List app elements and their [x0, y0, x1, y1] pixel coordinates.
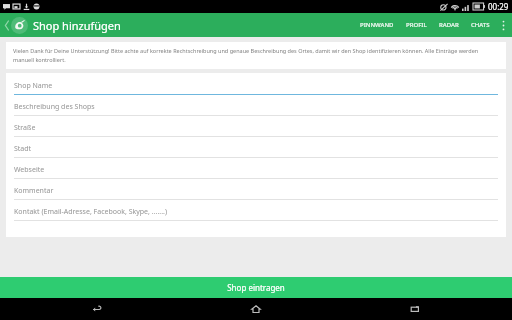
staticText: Stadt — [14, 144, 32, 154]
button[interactable]: Kontakt (Email-Adresse, Facebook, Skype,… — [14, 204, 498, 225]
button[interactable]: Webseite — [14, 162, 498, 183]
staticText: Shop hinzufügen — [33, 18, 121, 33]
button[interactable]: Recent apps — [341, 298, 512, 320]
staticText: Vielen Dank für Deine Unterstützung! Bit… — [13, 47, 499, 64]
staticText: Straße — [14, 123, 36, 133]
button[interactable]: CHATS — [465, 13, 496, 37]
button[interactable]: Stadt — [14, 141, 498, 162]
button[interactable]: More options — [496, 13, 510, 37]
button[interactable]: Back — [0, 298, 170, 320]
staticText: Shop Name — [14, 81, 53, 91]
button[interactable]: Home — [170, 298, 341, 320]
button[interactable]: PINNWAND — [354, 13, 400, 37]
staticText: Beschreibung des Shops — [14, 102, 95, 112]
staticText: Webseite — [14, 165, 45, 175]
button[interactable]: Beschreibung des Shops — [14, 99, 498, 120]
staticText: PINNWAND — [360, 21, 394, 29]
staticText: 00:29 — [488, 1, 509, 12]
button[interactable]: Shop eintragen — [0, 277, 512, 298]
staticText: PROFIL — [406, 21, 427, 29]
staticText: Shop eintragen — [227, 282, 285, 293]
staticText: CHATS — [471, 21, 490, 29]
button[interactable]: PROFIL — [400, 13, 433, 37]
staticText: Kommentar — [14, 186, 54, 196]
staticText: RADAR — [439, 21, 459, 29]
button[interactable]: Shop Name — [14, 78, 498, 99]
button[interactable]: RADAR — [433, 13, 465, 37]
staticText: Kontakt (Email-Adresse, Facebook, Skype,… — [14, 207, 167, 217]
button[interactable]: Kommentar — [14, 183, 498, 204]
button[interactable]: Navigate up — [3, 17, 123, 34]
button[interactable]: Straße — [14, 120, 498, 141]
